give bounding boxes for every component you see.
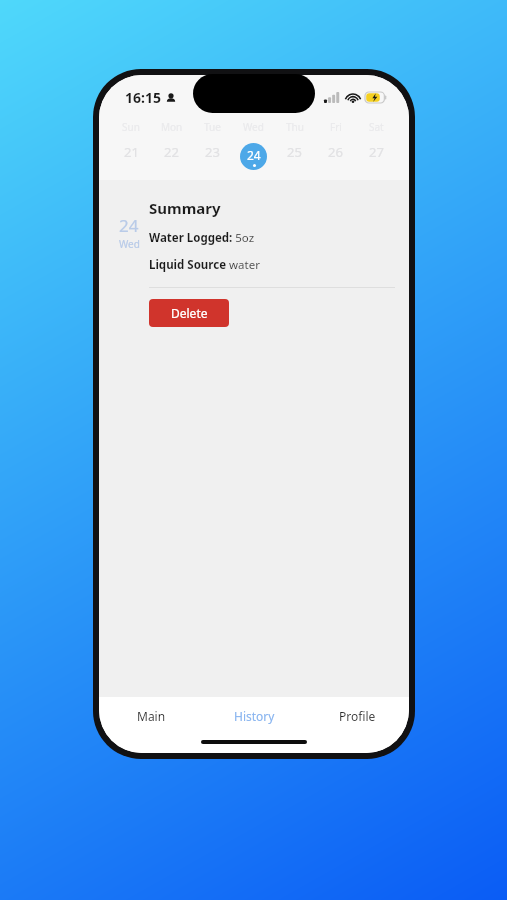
staticText: Main [137, 708, 166, 724]
button[interactable]: 21 [111, 143, 151, 161]
button[interactable]: 26 [315, 143, 356, 161]
button[interactable]: Profile [306, 697, 409, 735]
staticText: Summary [149, 198, 221, 218]
staticText: Liquid Source water [149, 257, 260, 273]
staticText: 21 [124, 143, 139, 161]
button[interactable]: 22 [151, 143, 192, 161]
staticText: 24 [247, 147, 261, 163]
button[interactable]: History [203, 697, 306, 735]
staticText: Wed [119, 237, 140, 251]
staticText: 16:15 [125, 88, 161, 107]
button[interactable]: 24 [233, 143, 274, 170]
staticText: 22 [164, 143, 179, 161]
button[interactable]: 27 [356, 143, 397, 161]
staticText: 26 [328, 143, 343, 161]
staticText: Tue [204, 120, 221, 134]
staticText: Fri [330, 120, 342, 134]
staticText: 23 [205, 143, 220, 161]
button[interactable]: 23 [192, 143, 233, 161]
button[interactable]: Delete [149, 299, 229, 327]
button[interactable]: Main [99, 697, 203, 735]
staticText: 27 [369, 143, 384, 161]
staticText: Water Logged: 5oz [149, 230, 255, 246]
staticText: Profile [339, 708, 376, 724]
staticText: Thu [286, 120, 304, 134]
staticText: Sun [122, 120, 140, 134]
staticText: Sat [369, 120, 384, 134]
staticText: 25 [287, 143, 302, 161]
staticText: Mon [161, 120, 183, 134]
staticText: History [234, 708, 275, 724]
staticText: 24 [119, 214, 139, 237]
staticText: Delete [171, 305, 208, 321]
staticText: Wed [243, 120, 264, 134]
button[interactable]: 25 [274, 143, 315, 161]
